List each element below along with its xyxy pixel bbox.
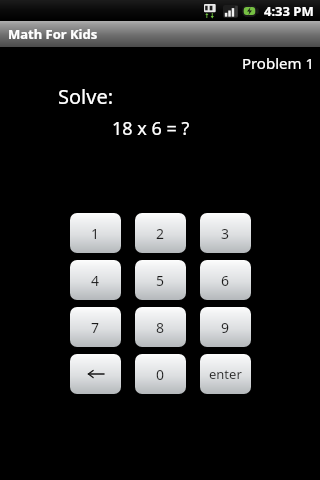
staticText: 9 [221,318,230,337]
staticText: Problem 1 [0,53,314,73]
staticText: 4:33 PM [264,2,314,20]
button[interactable]: 8 [135,307,186,347]
button[interactable]: 6 [200,260,251,300]
button[interactable]: 3 [200,213,251,253]
button[interactable]: 7 [70,307,121,347]
staticText: 6 [221,271,230,290]
button[interactable]: 1 [70,213,121,253]
button[interactable]: 4 [70,260,121,300]
button[interactable]: 9 [200,307,251,347]
staticText: enter [209,365,242,383]
button[interactable]: 0 [135,354,186,394]
staticText: Math For Kids [8,25,98,43]
staticText: 1 [91,224,100,243]
staticText: 0 [156,365,165,384]
staticText: 18 x 6 = ? [112,116,190,141]
button[interactable]: enter [200,354,251,394]
button[interactable]: 2 [135,213,186,253]
staticText: 8 [156,318,165,337]
staticText: 4 [91,271,100,290]
staticText: 5 [156,271,165,290]
staticText: 7 [91,318,100,337]
button[interactable]: 5 [135,260,186,300]
staticText: Solve: [58,83,114,110]
staticText: 2 [156,224,165,243]
button[interactable]: Backspace [70,354,121,394]
staticText: 3 [221,224,230,243]
